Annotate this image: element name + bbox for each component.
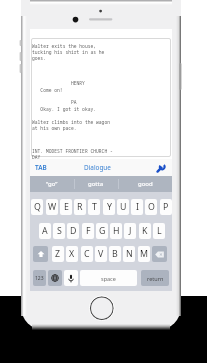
staticText: D [70, 225, 77, 237]
button[interactable]: N [123, 246, 135, 262]
button[interactable]: TAB [30, 159, 52, 176]
staticText: TAB [35, 163, 47, 172]
staticText: Come on! [32, 87, 63, 93]
staticText: return [147, 275, 164, 282]
button[interactable]: return [141, 270, 169, 286]
staticText: B [112, 248, 118, 260]
staticText: N [126, 248, 133, 260]
button[interactable]: Settings [152, 159, 168, 176]
button[interactable]: W [46, 199, 58, 215]
button[interactable]: A [39, 223, 51, 239]
other: Shift [37, 250, 45, 258]
staticText: P [163, 201, 169, 213]
staticText: T [92, 201, 97, 213]
button[interactable]: H [110, 223, 122, 239]
staticText: tucking his shirt in as he [32, 49, 105, 55]
button[interactable]: 123 [33, 270, 46, 286]
staticText: X [69, 248, 75, 260]
staticText: INT. MODEST FRONTIER CHURCH - [32, 148, 113, 154]
staticText: F [86, 225, 91, 237]
button[interactable]: Z [52, 246, 64, 262]
other: Dictation [68, 274, 74, 283]
button[interactable]: B [109, 246, 121, 262]
staticText: Walter exits the house, [32, 43, 97, 49]
staticText: V [98, 248, 104, 260]
button[interactable]: G [96, 223, 108, 239]
button[interactable]: U [117, 199, 129, 215]
staticText: goes. [32, 55, 46, 61]
staticText: HENRY [32, 80, 85, 86]
button[interactable]: Q [31, 199, 43, 215]
button[interactable]: V [95, 246, 107, 262]
button[interactable]: good [118, 176, 172, 192]
button[interactable]: M [138, 246, 150, 262]
staticText: DAY [32, 154, 41, 160]
staticText: Y [107, 201, 112, 213]
button[interactable]: space [80, 270, 137, 286]
button[interactable]: O [145, 199, 157, 215]
button[interactable]: X [66, 246, 78, 262]
staticText: S [57, 225, 62, 237]
staticText: Walter climbs into the wagon [32, 119, 110, 125]
button[interactable]: D [67, 223, 79, 239]
other: Change keyboard [51, 274, 59, 282]
staticText: 123 [35, 275, 44, 282]
button[interactable]: J [124, 223, 136, 239]
button[interactable]: S [53, 223, 65, 239]
staticText: Dialogue [84, 163, 111, 172]
staticText: J [129, 225, 132, 237]
button[interactable]: gotta [74, 176, 118, 192]
button[interactable]: Backspace [152, 246, 167, 262]
button[interactable]: Dictation [64, 270, 78, 286]
button[interactable]: L [153, 223, 165, 239]
button[interactable]: T [88, 199, 100, 215]
button[interactable]: Dialogue [76, 159, 118, 176]
button[interactable]: C [81, 246, 93, 262]
staticText: I [136, 201, 139, 213]
staticText: M [140, 248, 148, 260]
button[interactable]: F [82, 223, 94, 239]
button[interactable]: K [139, 223, 151, 239]
staticText: W [48, 201, 57, 213]
staticText: Q [34, 201, 41, 213]
button[interactable]: Change keyboard [48, 270, 62, 286]
other: Backspace [155, 251, 164, 258]
staticText: E [64, 201, 69, 213]
staticText: “go” [46, 180, 58, 188]
staticText: G [99, 225, 106, 237]
staticText: C [84, 248, 90, 260]
button[interactable]: Y [103, 199, 115, 215]
staticText: Z [55, 248, 61, 260]
staticText: A [42, 225, 48, 237]
staticText: R [77, 201, 83, 213]
button[interactable]: I [131, 199, 143, 215]
staticText: at his own pace. [32, 125, 77, 131]
staticText: H [113, 225, 120, 237]
staticText: K [142, 225, 148, 237]
staticText: PA [32, 99, 77, 105]
staticText: U [120, 201, 127, 213]
button[interactable]: Shift [33, 246, 48, 262]
button[interactable]: “go” [30, 176, 74, 192]
staticText: gotta [88, 180, 104, 188]
staticText: Okay. I got it okay. [32, 106, 97, 112]
staticText: O [148, 201, 155, 213]
staticText: L [157, 225, 162, 237]
staticText: space [101, 275, 116, 282]
staticText: good [138, 180, 153, 188]
button[interactable]: P [160, 199, 172, 215]
button[interactable]: R [74, 199, 86, 215]
button[interactable]: E [60, 199, 72, 215]
